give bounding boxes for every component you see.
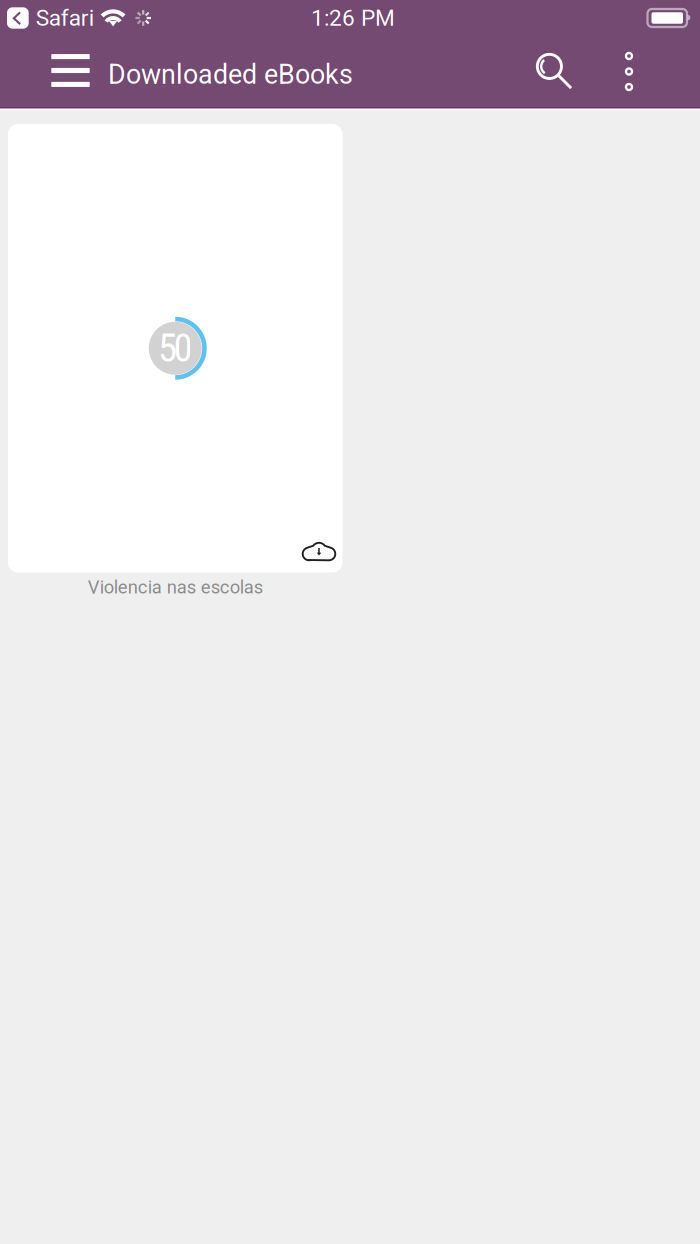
staticText: Downloaded eBooks [108, 59, 353, 90]
staticText: Violencia nas escolas [88, 576, 263, 598]
button[interactable]: Menu [36, 36, 105, 107]
staticText: Safari [36, 5, 95, 31]
button[interactable]: More options [605, 36, 653, 107]
button[interactable]: Search [504, 36, 605, 107]
button[interactable]: 50 [8, 124, 342, 598]
staticText: 1:26 PM [311, 5, 395, 31]
staticText: 50 [158, 326, 192, 371]
